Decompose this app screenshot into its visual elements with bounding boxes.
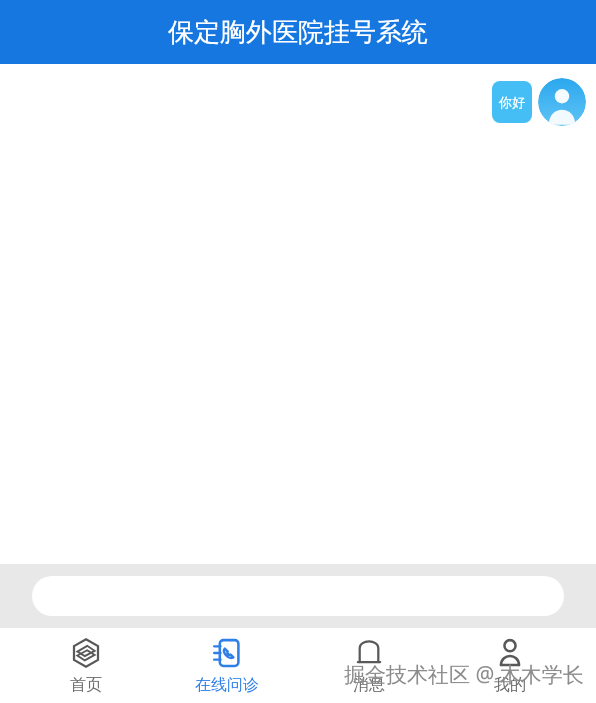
- button[interactable]: 消息: [314, 628, 424, 695]
- button[interactable]: Account: [538, 78, 586, 126]
- staticText: 消息: [353, 675, 385, 695]
- button[interactable]: 你好: [492, 81, 532, 123]
- staticText: 你好: [499, 94, 525, 110]
- staticText: 我的: [494, 675, 526, 695]
- button[interactable]: 在线问诊: [172, 628, 282, 695]
- button[interactable]: 首页: [31, 628, 141, 695]
- staticText: 在线问诊: [195, 675, 259, 695]
- button[interactable]: 我的: [455, 628, 565, 695]
- staticText: 保定胸外医院挂号系统: [168, 16, 428, 49]
- staticText: 首页: [70, 675, 102, 695]
- staticText: 掘金技术社区 @ 木木学长: [344, 660, 584, 689]
